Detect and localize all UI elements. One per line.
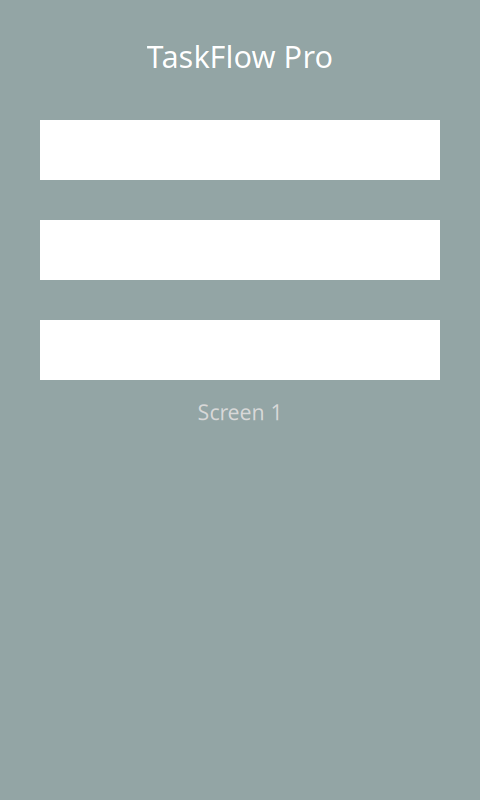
staticText: Screen 1 bbox=[197, 398, 282, 426]
staticText: TaskFlow Pro bbox=[146, 36, 333, 76]
